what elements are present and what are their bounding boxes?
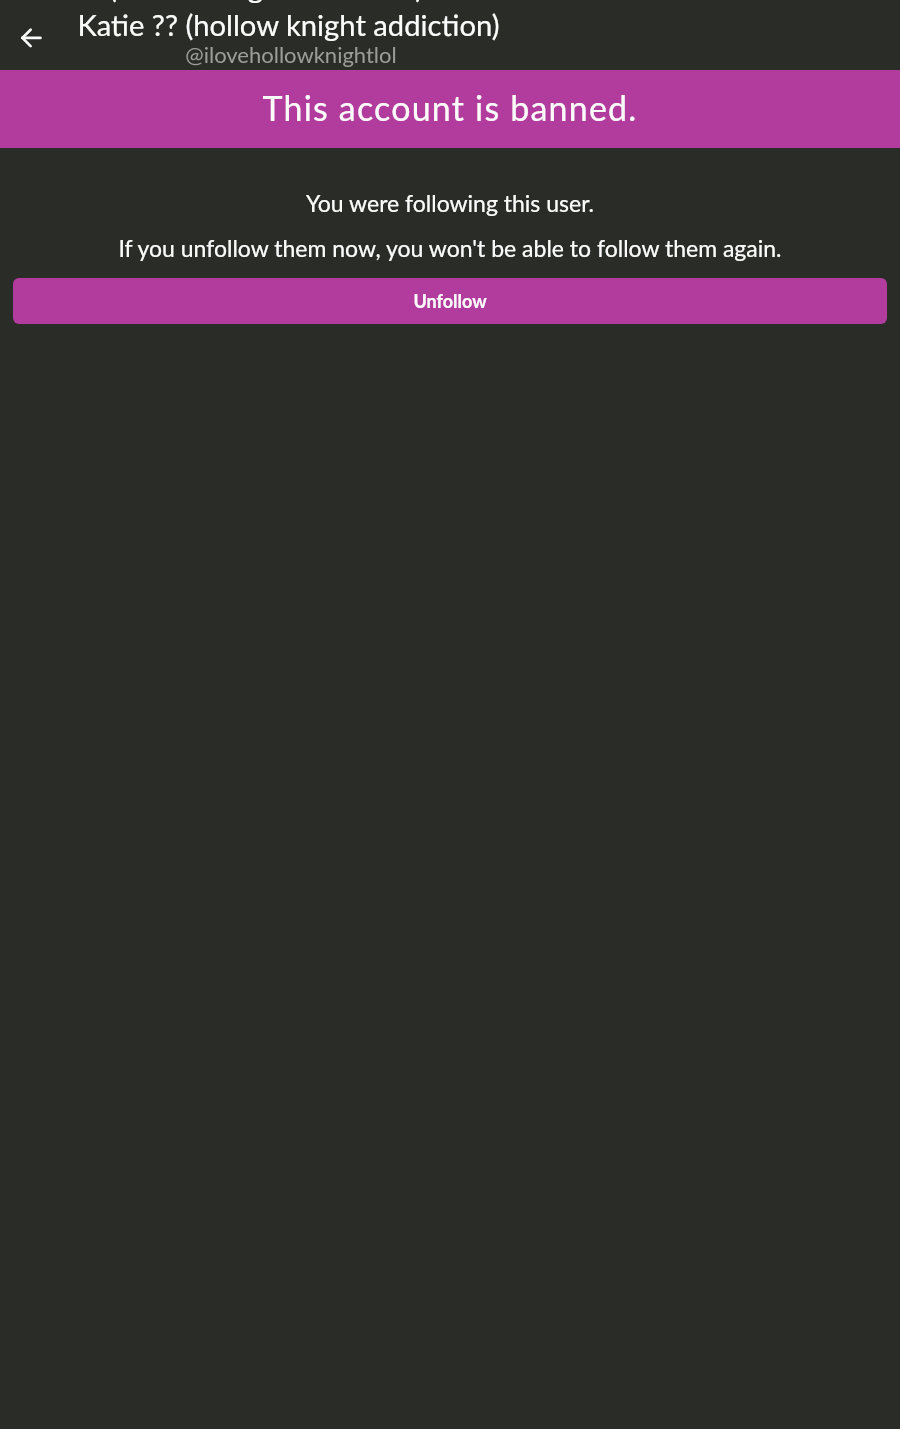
staticText: Katie ?? (hollow knight addiction) (77, 7, 500, 42)
staticText: This account is banned. (262, 87, 638, 128)
button[interactable]: Unfollow (13, 278, 887, 324)
staticText: Katie ?? (hollow knight addiction) (1, 0, 424, 4)
button[interactable]: Back (0, 0, 62, 70)
staticText: You were following this user. (0, 189, 900, 217)
button[interactable]: Katie ?? (hollow knight addiction) (77, 7, 500, 68)
staticText: If you unfollow them now, you won't be a… (0, 234, 900, 262)
staticText: @ilovehollowknightlol (185, 41, 397, 67)
staticText: Unfollow (413, 290, 487, 312)
